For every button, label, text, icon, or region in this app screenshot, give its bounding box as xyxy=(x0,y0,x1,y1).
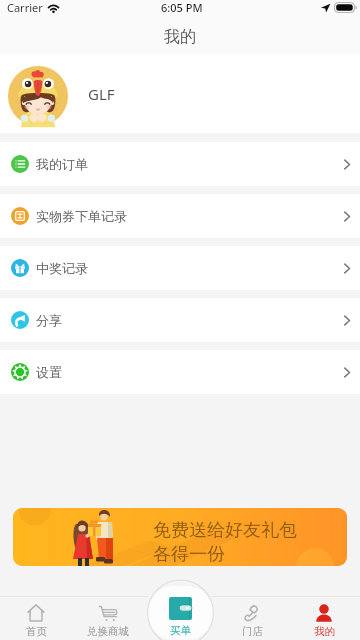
button[interactable]: 设置 xyxy=(0,350,360,394)
staticText: 买单 xyxy=(170,624,191,637)
staticText: 中奖记录 xyxy=(36,260,88,276)
staticText: 分享 xyxy=(36,312,62,328)
button[interactable]: 免费送给好友礼包 xyxy=(13,508,347,566)
staticText: 我的订单 xyxy=(36,156,88,172)
button[interactable]: 分享 xyxy=(0,298,360,342)
staticText: 我的 xyxy=(314,625,335,638)
button[interactable]: 中奖记录 xyxy=(0,246,360,290)
button[interactable]: 实物券下单记录 xyxy=(0,194,360,238)
button[interactable]: 兑换商城 xyxy=(72,596,144,640)
staticText: Carrier xyxy=(7,0,43,15)
button[interactable]: GLF xyxy=(0,54,360,133)
button[interactable]: 门店 xyxy=(216,596,288,640)
button[interactable]: 买单 xyxy=(147,586,214,640)
staticText: 6:05 PM xyxy=(161,0,203,15)
staticText: 兑换商城 xyxy=(87,625,129,638)
staticText: 设置 xyxy=(36,364,62,380)
button[interactable]: 首页 xyxy=(0,596,72,640)
staticText: 我的 xyxy=(164,27,196,47)
staticText: 首页 xyxy=(26,625,47,638)
staticText: 各得一份 xyxy=(153,543,225,566)
button[interactable]: 我的 xyxy=(288,596,360,640)
staticText: 实物券下单记录 xyxy=(36,208,127,224)
staticText: 门店 xyxy=(242,625,263,638)
staticText: 免费送给好友礼包 xyxy=(153,519,297,542)
staticText: GLF xyxy=(88,84,115,104)
button[interactable]: 我的订单 xyxy=(0,142,360,186)
